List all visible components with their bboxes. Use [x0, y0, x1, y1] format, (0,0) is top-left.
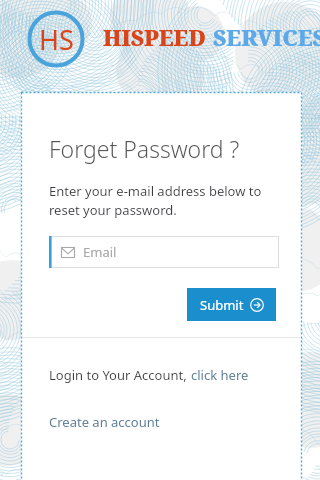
staticText: Login to Your Account, — [49, 366, 191, 384]
staticText: Enter your e-mail address below to reset… — [49, 182, 262, 219]
staticText: SERVICES — [213, 22, 320, 52]
staticText: Email — [83, 243, 117, 261]
staticText: Submit — [200, 296, 244, 314]
staticText: HS — [39, 21, 74, 58]
button[interactable]: Submit — [187, 288, 276, 321]
staticText: HISPEED — [103, 22, 206, 52]
button[interactable]: Login to Your Account, — [49, 366, 249, 384]
staticText: click here — [191, 366, 249, 384]
staticText: Forget Password ? — [49, 133, 240, 164]
button[interactable]: Email — [49, 236, 279, 268]
other: HiSpeed Services logo — [27, 10, 85, 68]
button[interactable]: Create an account — [49, 413, 160, 431]
